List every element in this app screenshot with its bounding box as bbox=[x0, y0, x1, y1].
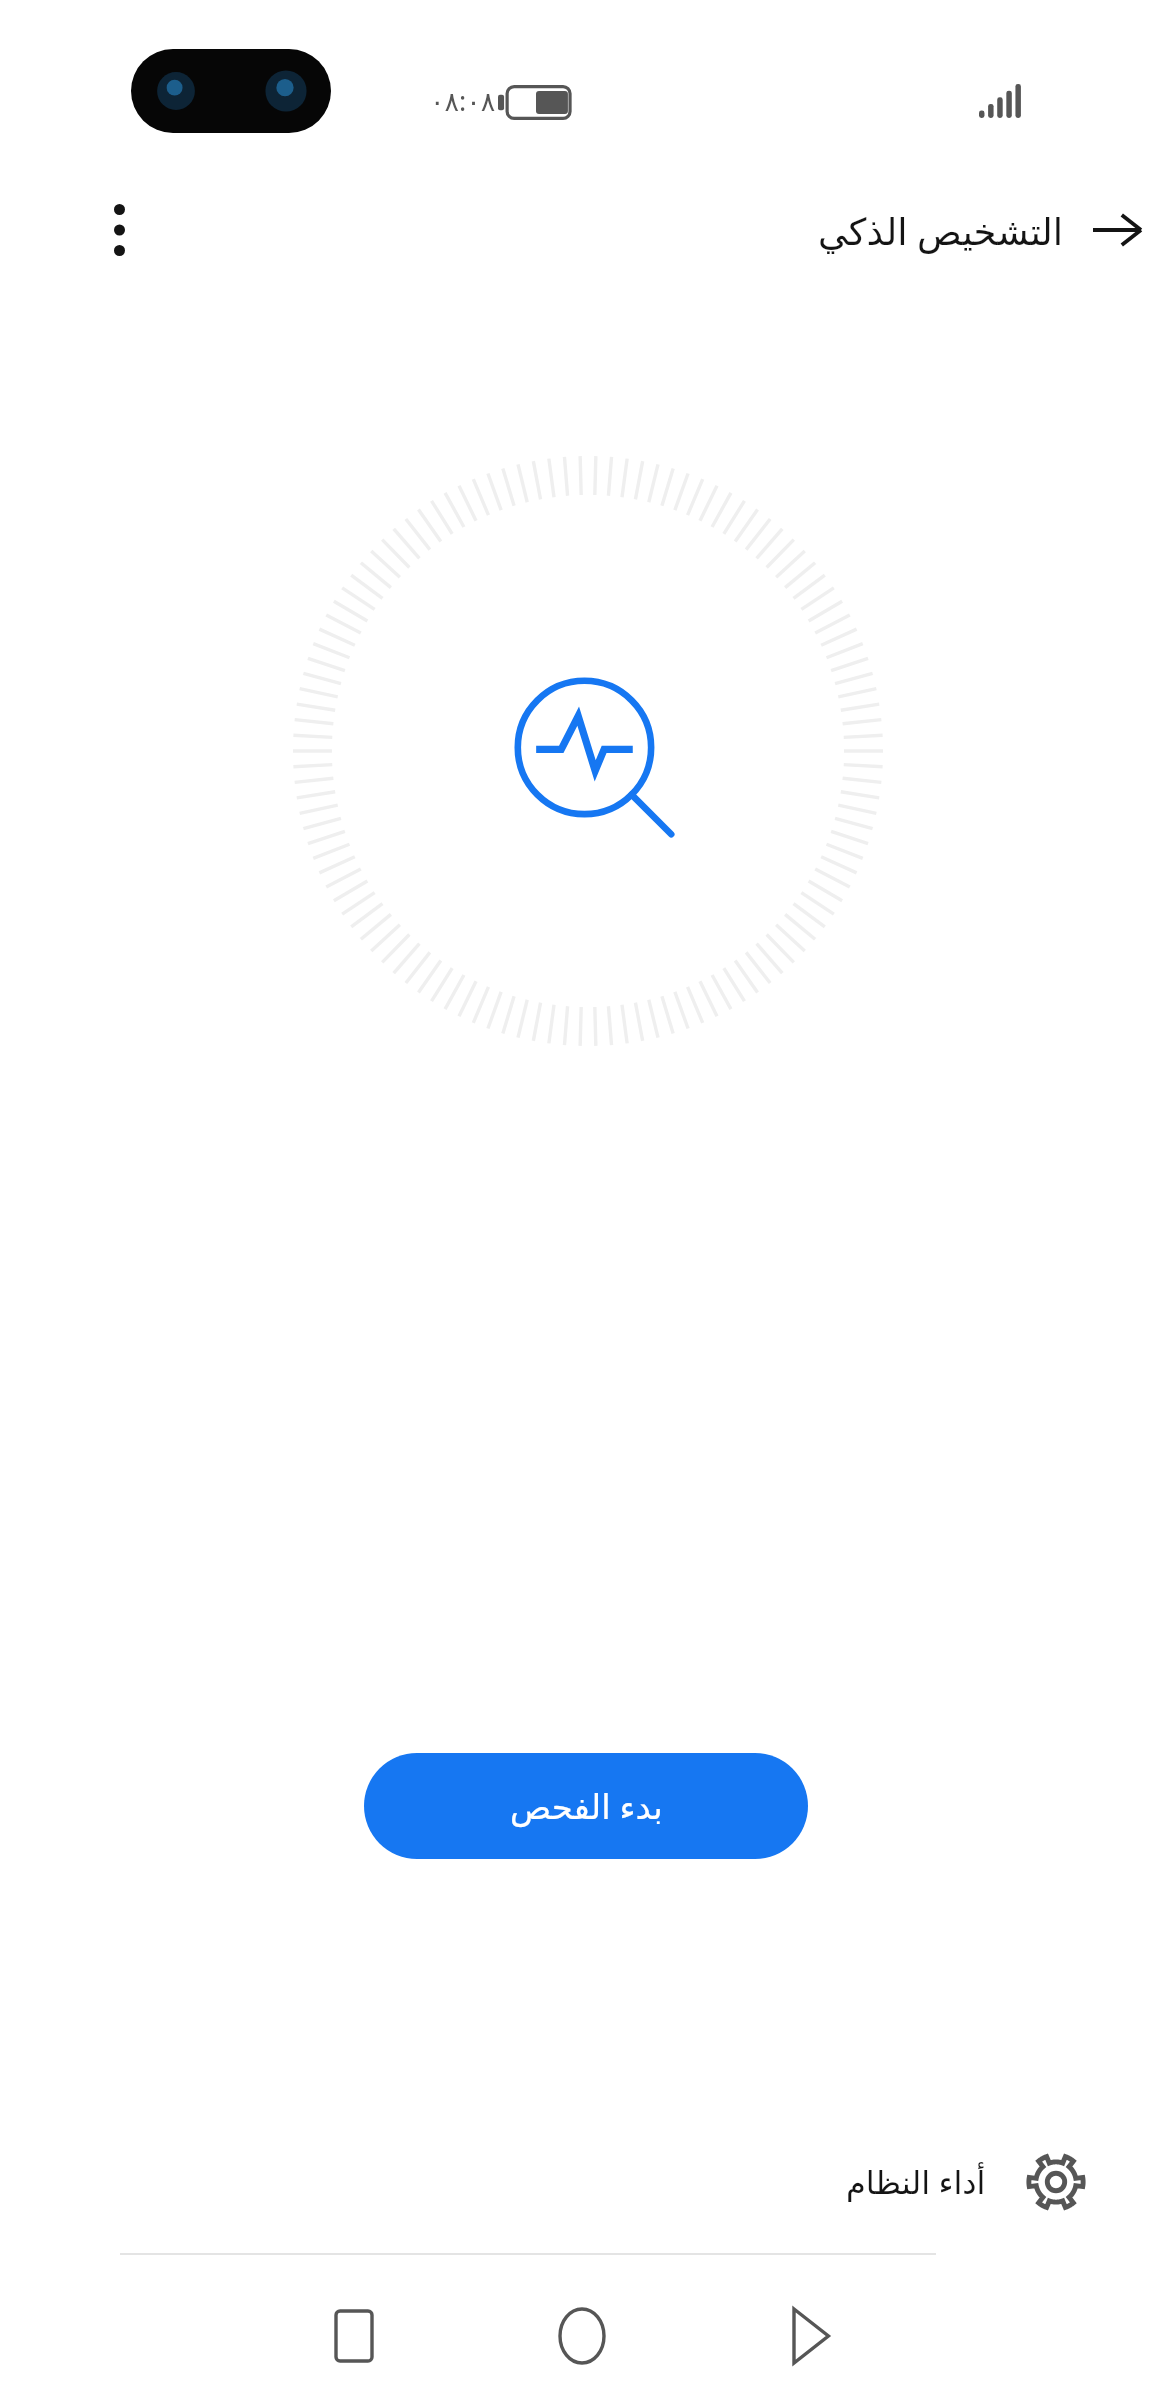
button[interactable]: بدء الفحص bbox=[364, 1753, 808, 1859]
button[interactable]: Recent apps bbox=[300, 2282, 408, 2390]
other: Settings bbox=[1026, 2152, 1086, 2212]
button[interactable]: Back bbox=[1078, 191, 1156, 269]
button[interactable]: More options bbox=[86, 197, 152, 263]
button[interactable]: أداء النظام bbox=[0, 2133, 1176, 2231]
staticText: أداء النظام bbox=[846, 2160, 986, 2204]
button[interactable]: Back bbox=[756, 2282, 864, 2390]
staticText: التشخيص الذكي bbox=[818, 205, 1064, 255]
staticText: بدء الفحص bbox=[510, 1783, 663, 1829]
staticText: ٠٨:٠٨ bbox=[430, 82, 496, 119]
button[interactable]: Home bbox=[528, 2282, 636, 2390]
